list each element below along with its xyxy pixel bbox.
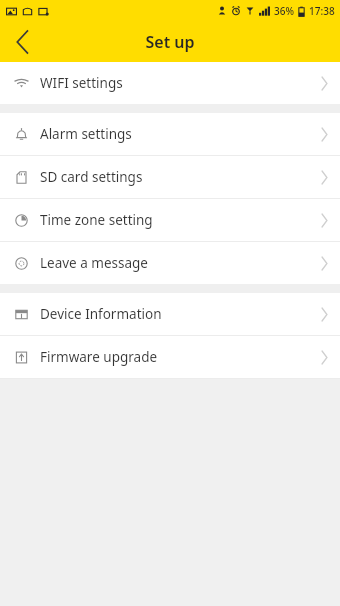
button[interactable]: Device Information bbox=[0, 293, 340, 335]
staticText: Leave a message bbox=[40, 254, 321, 272]
staticText: Time zone setting bbox=[40, 211, 321, 229]
staticText: WIFI settings bbox=[40, 74, 321, 92]
staticText: Alarm settings bbox=[40, 125, 321, 143]
button[interactable]: Back bbox=[0, 22, 44, 62]
button[interactable]: SD card settings bbox=[0, 156, 340, 198]
button[interactable]: Time zone setting bbox=[0, 199, 340, 241]
staticText: Firmware upgrade bbox=[40, 348, 321, 366]
staticText: Set up bbox=[145, 31, 195, 53]
button[interactable]: WIFI settings bbox=[0, 62, 340, 104]
staticText: SD card settings bbox=[40, 168, 321, 186]
button[interactable]: Alarm settings bbox=[0, 113, 340, 155]
button[interactable]: Leave a message bbox=[0, 242, 340, 284]
staticText: 17:38 bbox=[309, 4, 335, 18]
staticText: 36% bbox=[274, 4, 294, 18]
button[interactable]: Firmware upgrade bbox=[0, 336, 340, 378]
staticText: Device Information bbox=[40, 305, 321, 323]
